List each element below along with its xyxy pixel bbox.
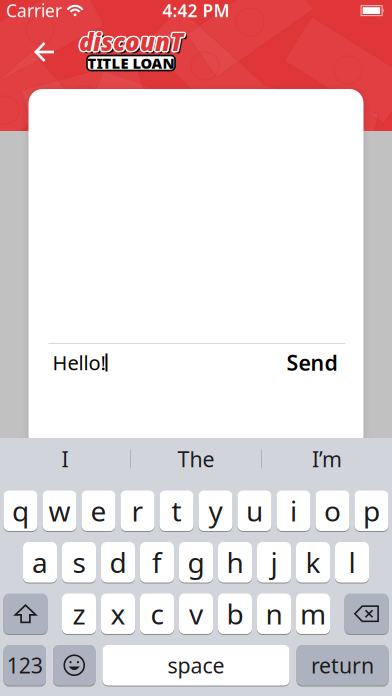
staticText: discounT <box>78 26 182 58</box>
button[interactable]: space <box>102 644 289 686</box>
button[interactable]: d <box>101 541 135 583</box>
button[interactable]: f <box>140 541 174 583</box>
button[interactable]: Shift <box>3 593 47 634</box>
button[interactable]: Send <box>286 348 337 377</box>
button[interactable]: p <box>354 490 388 531</box>
staticText: g <box>187 544 204 581</box>
button[interactable]: q <box>3 490 37 531</box>
button[interactable]: n <box>257 593 291 634</box>
staticText: 4:42 PM <box>162 0 229 22</box>
staticText: TITLE LOAN <box>87 53 174 73</box>
staticText: y <box>208 492 222 529</box>
staticText: w <box>48 492 70 529</box>
button[interactable]: x <box>101 593 135 634</box>
button[interactable]: y <box>198 490 232 531</box>
button[interactable]: h <box>218 541 252 583</box>
button[interactable]: The <box>131 438 261 480</box>
staticText: b <box>226 595 243 632</box>
button[interactable]: I’m <box>262 438 392 480</box>
staticText: q <box>12 492 29 529</box>
staticText: z <box>72 595 85 632</box>
staticText: m <box>300 595 326 632</box>
staticText: i <box>290 492 297 529</box>
staticText: f <box>152 544 162 581</box>
staticText: discounT <box>78 25 182 57</box>
staticText: space <box>167 651 224 679</box>
button[interactable]: r <box>120 490 154 531</box>
staticText: I <box>61 445 68 473</box>
staticText: e <box>90 492 106 529</box>
staticText: t <box>171 492 181 529</box>
button[interactable]: m <box>296 593 330 634</box>
button[interactable]: b <box>218 593 252 634</box>
staticText: s <box>72 544 85 581</box>
button[interactable]: l <box>335 541 369 583</box>
button[interactable]: Back <box>25 32 65 72</box>
staticText: Carrier <box>6 0 62 22</box>
staticText: o <box>324 492 341 529</box>
staticText: u <box>246 492 263 529</box>
staticText: l <box>348 544 355 581</box>
staticText: 123 <box>7 651 43 679</box>
staticText: The <box>177 445 214 473</box>
staticText: I’m <box>312 445 342 473</box>
staticText: discounT <box>79 26 183 58</box>
staticText: discounT <box>80 26 184 58</box>
button[interactable]: return <box>296 644 388 686</box>
button[interactable]: t <box>159 490 193 531</box>
staticText: h <box>226 544 243 581</box>
staticText: n <box>265 595 282 632</box>
button[interactable]: i <box>276 490 310 531</box>
staticText: Hello! <box>52 349 105 376</box>
staticText: discounT <box>80 25 184 57</box>
button[interactable]: discounT <box>79 31 183 73</box>
button[interactable]: s <box>62 541 96 583</box>
staticText: k <box>305 544 320 581</box>
button[interactable]: a <box>23 541 57 583</box>
staticText: Send <box>286 348 337 377</box>
staticText: return <box>311 651 374 679</box>
button[interactable]: j <box>257 541 291 583</box>
staticText: a <box>32 544 48 581</box>
button[interactable]: Delete <box>344 593 388 634</box>
staticText: v <box>189 595 203 632</box>
button[interactable]: v <box>179 593 213 634</box>
button[interactable]: w <box>42 490 76 531</box>
button[interactable]: I <box>0 438 130 480</box>
staticText: r <box>131 492 143 529</box>
staticText: p <box>363 492 380 529</box>
button[interactable]: 123 <box>3 644 46 686</box>
button[interactable]: Emoji <box>53 644 95 686</box>
staticText: discounT <box>81 28 185 60</box>
button[interactable]: z <box>62 593 96 634</box>
button[interactable]: e <box>81 490 115 531</box>
staticText: discounT <box>79 24 183 56</box>
button[interactable]: g <box>179 541 213 583</box>
staticText: x <box>110 595 125 632</box>
staticText: d <box>109 544 126 581</box>
staticText: c <box>150 595 163 632</box>
staticText: discounT <box>80 27 184 59</box>
button[interactable]: k <box>296 541 330 583</box>
staticText: j <box>270 544 277 581</box>
staticText: discounT <box>79 27 183 59</box>
button[interactable]: c <box>140 593 174 634</box>
button[interactable]: o <box>315 490 349 531</box>
staticText: discounT <box>78 27 182 59</box>
button[interactable]: u <box>237 490 271 531</box>
